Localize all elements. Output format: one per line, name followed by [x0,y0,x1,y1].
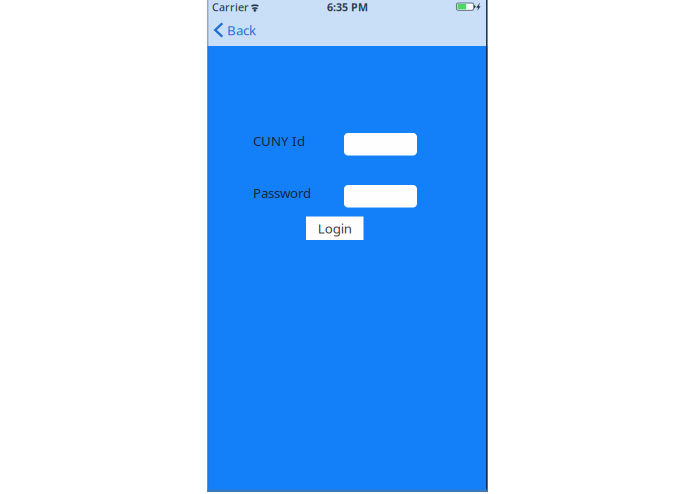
staticText: Carrier [212,0,249,14]
button[interactable]: Password [344,185,417,207]
staticText: Login [318,219,352,237]
button[interactable]: Back [207,14,264,46]
button[interactable]: CUNY Id [344,133,417,155]
staticText: CUNY Id [253,132,305,150]
button[interactable]: Login [306,216,363,240]
staticText: Back [227,21,256,39]
staticText: 6:35 PM [327,0,368,14]
staticText: Password [253,184,311,202]
